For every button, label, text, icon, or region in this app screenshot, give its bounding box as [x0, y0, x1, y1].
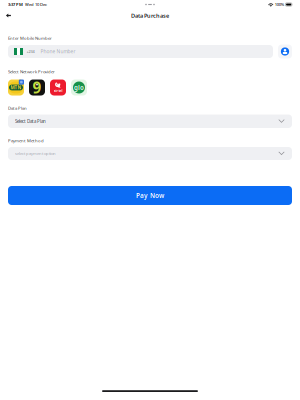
staticText: Payment Method: [8, 138, 44, 143]
button[interactable]: Select Data Plan: [8, 114, 292, 128]
staticText: 3:37 PM: [8, 2, 23, 7]
staticText: Enter Mobile Number: [8, 35, 52, 41]
staticText: Data Purchase: [131, 12, 169, 19]
button[interactable]: MTN: [8, 79, 24, 95]
button[interactable]: Choose contact: [278, 44, 292, 58]
staticText: Select Data Plan: [15, 118, 46, 124]
button[interactable]: Pay Now: [8, 186, 292, 205]
staticText: 100%: [275, 2, 284, 7]
staticText: +234: [26, 49, 34, 54]
staticText: select payment option: [15, 151, 56, 156]
staticText: Phone Number: [40, 48, 75, 55]
button[interactable]: Glo: [71, 79, 87, 95]
staticText: Wed 10 Dec: [23, 2, 47, 7]
staticText: Pay Now: [136, 191, 164, 200]
staticText: Data Plan: [8, 105, 27, 111]
button[interactable]: 9mobile: [29, 79, 45, 95]
button[interactable]: select payment option: [8, 147, 292, 160]
staticText: Select Network Provider: [8, 69, 55, 74]
staticText: MTN: [10, 84, 21, 90]
staticText: glo: [74, 83, 84, 91]
button[interactable]: Back: [3, 9, 14, 22]
staticText: airtel: [53, 88, 62, 93]
button[interactable]: Airtel: [50, 79, 66, 95]
staticText: 9: [32, 77, 41, 98]
